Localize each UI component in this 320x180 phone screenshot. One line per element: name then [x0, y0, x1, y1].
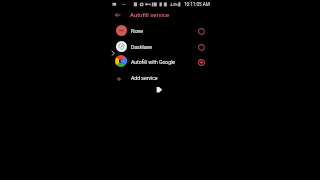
button[interactable]: Select Dashlane [195, 40, 207, 52]
button[interactable]: Dashlane [110, 38, 210, 53]
staticText: None [131, 28, 144, 34]
button[interactable]: Navigate up [111, 8, 124, 22]
button[interactable]: None [110, 22, 210, 37]
staticText: 10:11:05 AM [184, 2, 210, 7]
staticText: 44% [170, 2, 178, 7]
staticText: Autofill with Google [131, 59, 176, 65]
button[interactable]: Add service [110, 70, 210, 84]
staticText: Dashlane [131, 44, 153, 50]
staticText: Add service [131, 75, 158, 81]
staticText: Autofill service [130, 12, 170, 19]
button[interactable]: Select Autofill with Google [195, 55, 207, 67]
button[interactable]: Autofill with Google [110, 53, 210, 68]
button[interactable]: Select None [195, 24, 207, 36]
